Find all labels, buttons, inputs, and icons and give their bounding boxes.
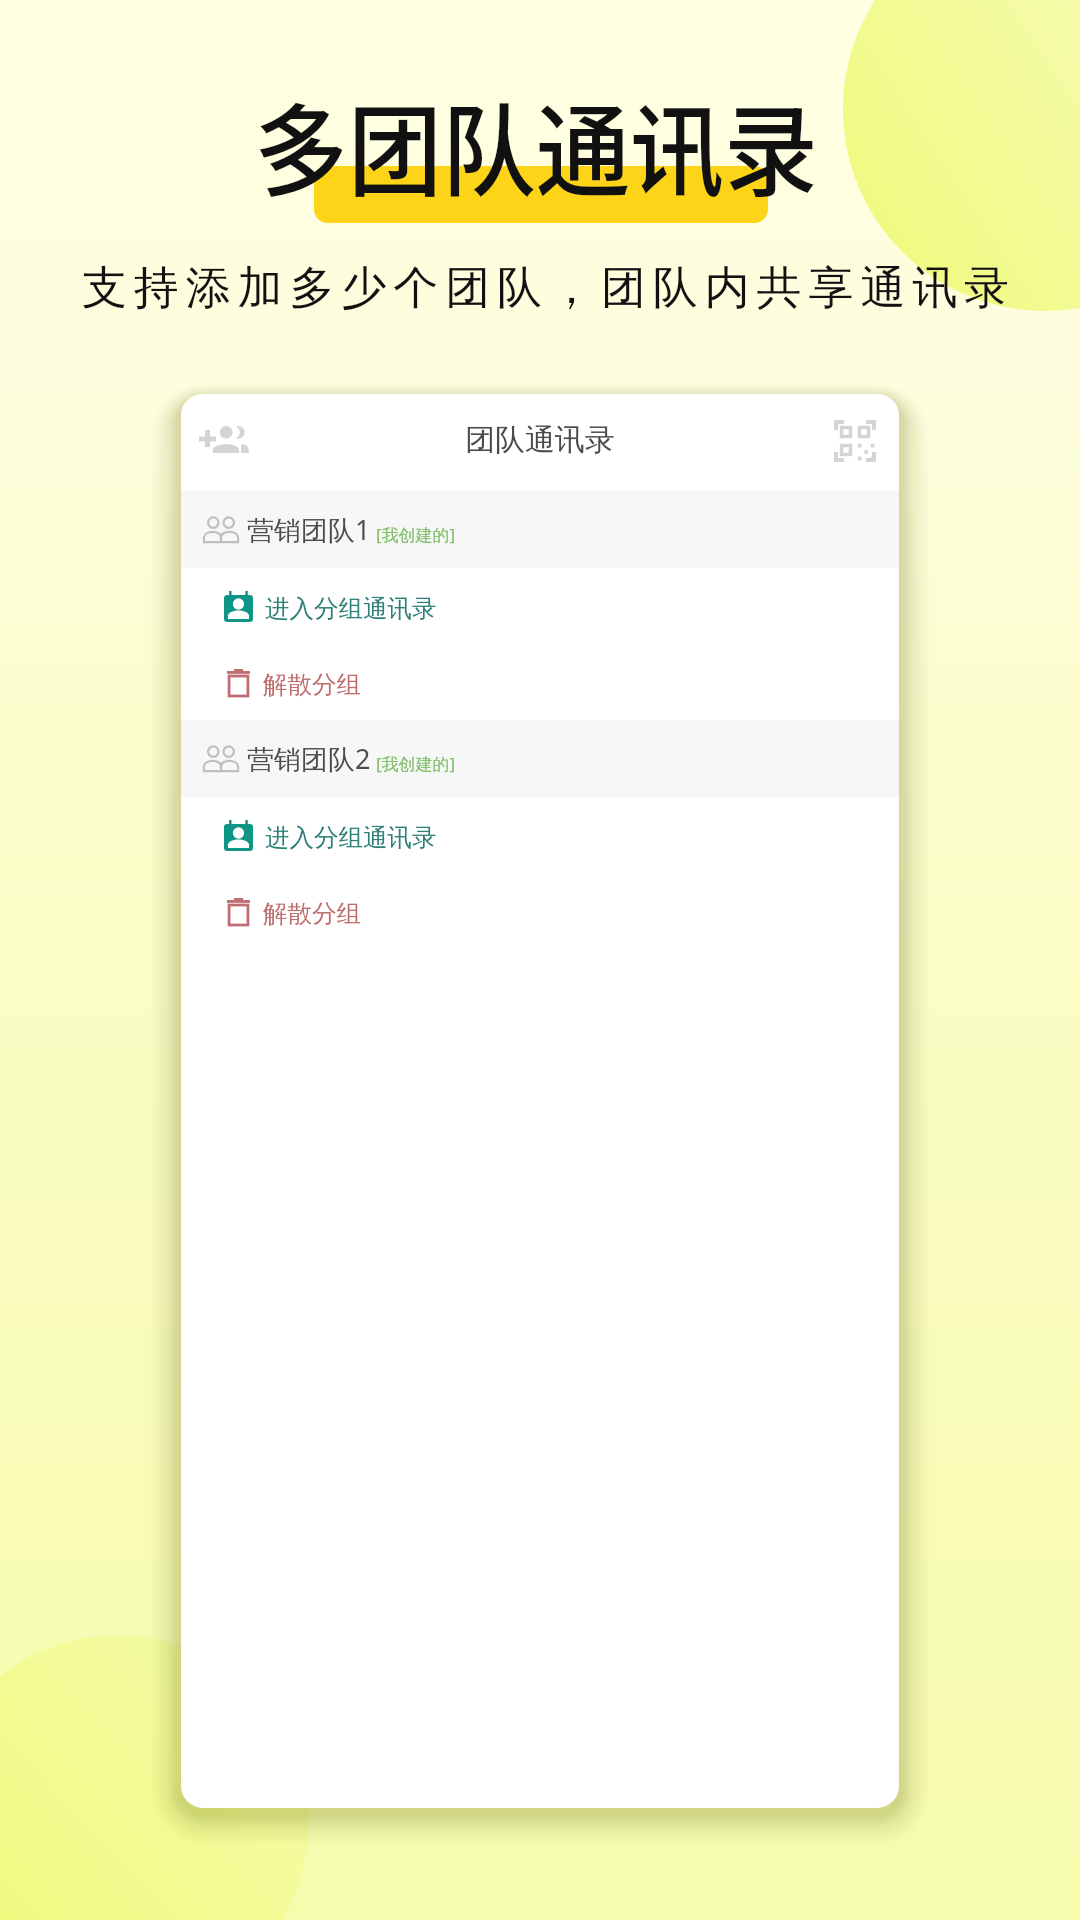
button[interactable]: 营销团队2 bbox=[181, 720, 899, 797]
button[interactable]: 营销团队1 bbox=[181, 491, 899, 568]
button[interactable]: 进入分组通讯录 bbox=[181, 797, 899, 873]
staticText: 进入分组通讯录 bbox=[265, 593, 437, 624]
button[interactable]: Scan QR code bbox=[820, 408, 890, 478]
button[interactable]: 解散分组 bbox=[181, 873, 899, 949]
staticText: [我创建的] bbox=[376, 752, 456, 775]
staticText: 团队通讯录 bbox=[465, 421, 615, 459]
staticText: [我创建的] bbox=[376, 523, 456, 546]
button[interactable]: 进入分组通讯录 bbox=[181, 568, 899, 644]
staticText: 多团队通讯录 bbox=[254, 73, 819, 217]
staticText: 解散分组 bbox=[263, 898, 361, 929]
staticText: 营销团队2 bbox=[247, 740, 371, 777]
staticText: 解散分组 bbox=[263, 669, 361, 700]
button[interactable]: 解散分组 bbox=[181, 644, 899, 720]
staticText: 营销团队1 bbox=[247, 511, 371, 548]
staticText: 支持添加多少个团队，团队内共享通讯录 bbox=[9, 260, 1080, 317]
button[interactable]: Add team bbox=[189, 408, 259, 478]
staticText: 进入分组通讯录 bbox=[265, 822, 437, 853]
